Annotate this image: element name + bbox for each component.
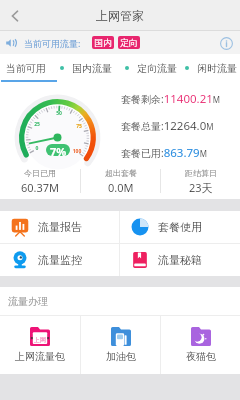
staticText: 100 xyxy=(72,148,82,155)
staticText: 国内 xyxy=(94,37,112,48)
staticText: 定向 xyxy=(120,37,138,48)
button[interactable]: 夜猫包 xyxy=(161,316,240,374)
staticText: 流量报告 xyxy=(38,220,82,234)
staticText: 0 xyxy=(32,145,42,152)
button[interactable]: 超出套餐 xyxy=(81,165,160,197)
staticText: 闲时流量 xyxy=(197,62,237,75)
staticText: 50 xyxy=(54,110,64,117)
staticText: 套餐已用:863.79M xyxy=(121,145,207,161)
button[interactable]: 定向 xyxy=(118,36,140,49)
staticText: 距结算日 xyxy=(185,168,217,178)
staticText: 60.37M xyxy=(21,180,60,195)
button[interactable]: 国内 xyxy=(92,36,114,49)
staticText: 23天 xyxy=(189,180,213,195)
staticText: 套餐使用 xyxy=(158,220,202,234)
button[interactable]: 套餐使用 xyxy=(120,211,240,243)
button[interactable]: 定向流量 xyxy=(137,54,177,82)
staticText: 上网流量包 xyxy=(15,350,65,363)
staticText: 今日已用 xyxy=(24,168,56,178)
staticText: 上网管家 xyxy=(96,8,144,23)
staticText: 国内流量 xyxy=(72,62,112,75)
staticText: 上网 xyxy=(34,336,46,344)
button[interactable]: 今日已用 xyxy=(0,165,80,197)
staticText: 7% xyxy=(50,144,67,156)
staticText: 25 xyxy=(32,121,42,128)
button[interactable]: 流量监控 xyxy=(0,244,119,276)
staticText: 套餐总量:12264.0M xyxy=(121,118,214,134)
button[interactable]: 上网 xyxy=(0,316,80,374)
button[interactable]: 闲时流量 xyxy=(197,54,237,82)
button[interactable]: 加油包 xyxy=(81,316,160,374)
staticText: 定向流量 xyxy=(137,62,177,75)
button[interactable]: Back xyxy=(0,0,30,31)
button[interactable]: 国内流量 xyxy=(72,54,112,82)
staticText: 流量办理 xyxy=(8,295,48,308)
button[interactable]: Info xyxy=(216,33,236,53)
staticText: 当前可用流量: xyxy=(24,37,81,49)
staticText: 75 xyxy=(74,123,84,130)
staticText: 流量秘籍 xyxy=(158,253,202,267)
staticText: 当前可用 xyxy=(6,62,46,75)
button[interactable]: 流量报告 xyxy=(0,211,119,243)
staticText: 套餐剩余:11400.21M xyxy=(121,91,221,107)
button[interactable]: 距结算日 xyxy=(161,165,240,197)
staticText: 流量监控 xyxy=(38,253,82,267)
staticText: 0.0M xyxy=(108,180,134,195)
staticText: 加油包 xyxy=(106,350,136,363)
staticText: 超出套餐 xyxy=(105,168,137,178)
button[interactable]: 当前可用 xyxy=(6,54,46,82)
staticText: 夜猫包 xyxy=(186,350,216,363)
button[interactable]: 流量秘籍 xyxy=(120,244,240,276)
